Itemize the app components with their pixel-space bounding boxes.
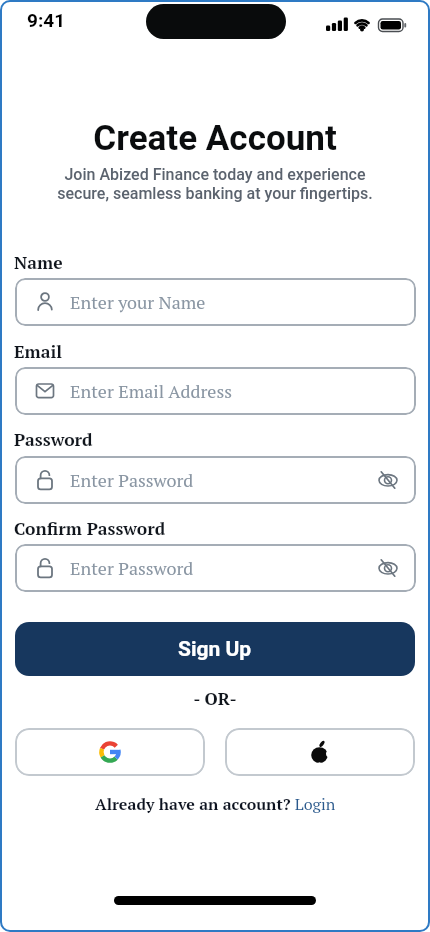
button[interactable]: Sign Up (15, 622, 415, 676)
staticText: Sign Up (178, 637, 252, 662)
button[interactable] (225, 728, 415, 776)
button[interactable]: Enter your Name (15, 278, 416, 326)
button[interactable]: Enter Email Address (15, 367, 416, 415)
staticText: 9:41 (27, 9, 66, 31)
staticText: Create Account (0, 118, 430, 159)
staticText: Enter Password (70, 468, 194, 492)
staticText: Already have an account? Login (95, 793, 336, 814)
staticText: - OR- (0, 687, 430, 710)
button[interactable]: Already have an account? Login (95, 793, 336, 814)
button[interactable] (15, 728, 205, 776)
button[interactable]: Enter Password (15, 456, 416, 504)
staticText: Enter Email Address (70, 379, 232, 403)
staticText: Password (14, 428, 93, 451)
staticText: Email (14, 340, 63, 363)
button[interactable]: Enter Password (15, 544, 416, 592)
staticText: Confirm Password (14, 517, 166, 540)
staticText: Join Abized Finance today and experience… (0, 165, 430, 203)
staticText: Enter your Name (70, 290, 206, 314)
staticText: Enter Password (70, 556, 194, 580)
staticText: Name (14, 251, 63, 274)
